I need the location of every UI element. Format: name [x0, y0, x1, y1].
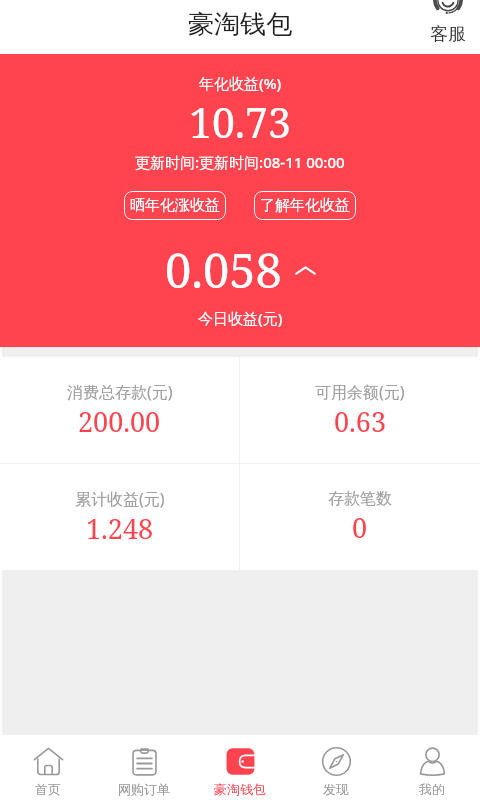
button[interactable]: 豪淘钱包 — [192, 735, 288, 800]
staticText: 200.00 — [78, 403, 161, 440]
staticText: 豪淘钱包 — [188, 8, 292, 41]
staticText: 豪淘钱包 — [214, 781, 266, 797]
staticText: 更新时间:更新时间:08-11 00:00 — [135, 152, 345, 172]
staticText: 0.058 — [165, 238, 282, 302]
button[interactable]: 我的 — [384, 735, 480, 800]
staticText: 10.73 — [189, 94, 291, 150]
staticText: 网购订单 — [118, 781, 170, 797]
button[interactable]: 首页 — [0, 735, 96, 800]
staticText: 我的 — [419, 781, 445, 797]
staticText: 可用余额(元) — [315, 381, 405, 403]
button[interactable]: 存款笔数 — [240, 464, 480, 570]
staticText: 消费总存款(元) — [67, 381, 173, 403]
staticText: 累计收益(元) — [75, 488, 165, 510]
staticText: 晒年化涨收益 — [130, 196, 220, 215]
staticText: 年化收益(%) — [199, 73, 282, 93]
staticText: 发现 — [323, 781, 349, 797]
button[interactable]: Customer service — [430, 0, 466, 46]
staticText: 首页 — [35, 781, 61, 797]
button[interactable]: 晒年化涨收益 — [124, 191, 226, 220]
button[interactable]: 网购订单 — [96, 735, 192, 800]
button[interactable]: 可用余额(元) — [240, 357, 480, 463]
staticText: 了解年化收益 — [260, 196, 350, 215]
button[interactable]: 累计收益(元) — [0, 464, 239, 570]
button[interactable]: 了解年化收益 — [254, 191, 356, 220]
staticText: 0 — [352, 509, 368, 546]
staticText: 客服 — [430, 23, 466, 46]
staticText: 存款笔数 — [328, 489, 392, 509]
staticText: 1.248 — [86, 510, 154, 547]
staticText: 今日收益(元) — [198, 308, 283, 328]
staticText: 0.63 — [334, 403, 387, 440]
button[interactable]: 发现 — [288, 735, 384, 800]
button[interactable]: 消费总存款(元) — [0, 357, 239, 463]
